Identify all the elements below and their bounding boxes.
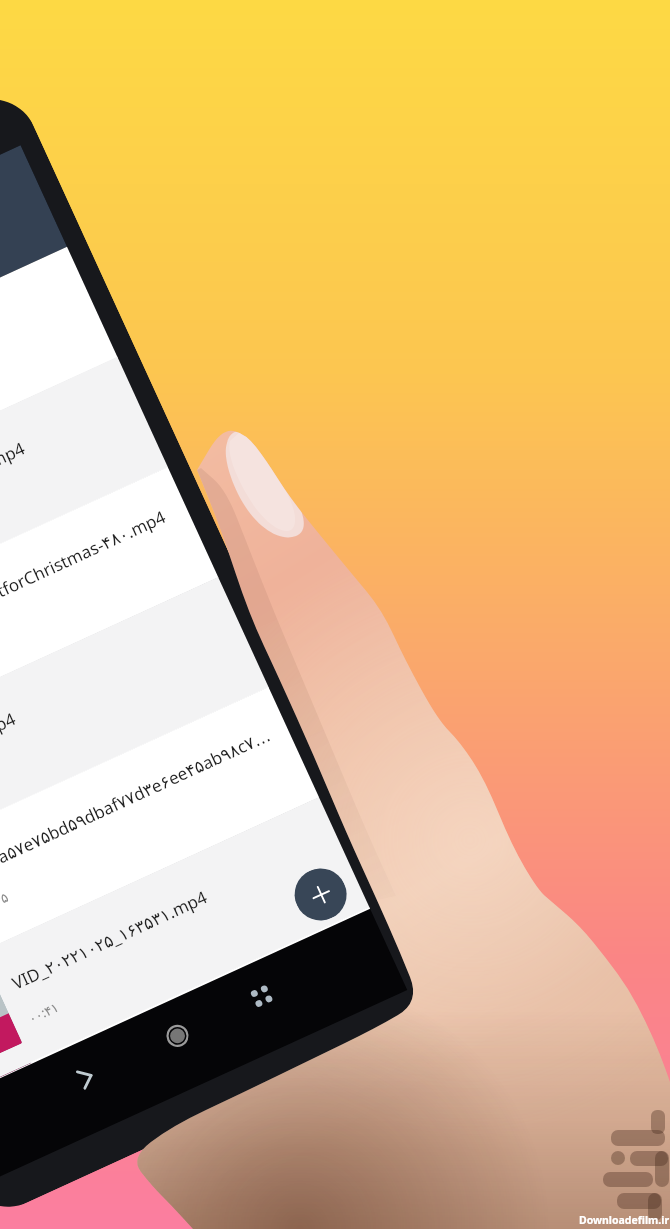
staticText: movie.mp4 <box>46 1018 128 1056</box>
button[interactable]: Recent apps <box>228 963 295 1029</box>
button[interactable]: MariahCry-AllIWantforChristmas-۴۸۰.mp4 <box>0 467 218 769</box>
staticText: clip_۱۲۳۴.mp4 <box>0 707 20 775</box>
staticText: VideoEditorProject_۱۴۰۳.mp4 <box>0 437 28 554</box>
staticText: ۰۰:۴۱ <box>25 998 62 1027</box>
button[interactable]: VID_۲۰۲۲۱۰۲۵_۱۶۳۵۳۱.mp4 <box>0 797 369 1099</box>
button[interactable] <box>0 145 67 439</box>
button[interactable]: Add <box>286 860 355 929</box>
staticText: ۰۰:۳۵ <box>0 888 11 917</box>
button[interactable]: VideoEditorProject_۱۴۰۳.mp4 <box>0 357 168 659</box>
staticText: Downloadefilm.ir <box>579 1213 670 1227</box>
staticText: ۶۲dda۵۷e۷۵bd۵۹dbaf۷۷d۳e۶ee۴۵ab۹۸c۷۶d.mp4 <box>0 723 275 885</box>
staticText: MariahCry-AllIWantforChristmas-۴۸۰.mp4 <box>0 505 169 664</box>
button[interactable]: clip_۱۲۳۴.mp4 <box>0 577 269 879</box>
button[interactable]: Video_۲۰۲۲۱۰_۱۲۳۴.mp4 <box>0 247 117 549</box>
button[interactable]: Back <box>58 1046 119 1107</box>
button[interactable]: Home <box>143 1001 212 1070</box>
button[interactable]: ۶۲dda۵۷e۷۵bd۵۹dbaf۷۷d۳e۶ee۴۵ab۹۸c۷۶d.mp4 <box>0 687 319 989</box>
button[interactable]: movie.mp4 <box>0 907 370 1100</box>
staticText: VID_۲۰۲۲۱۰۲۵_۱۶۳۵۳۱.mp4 <box>8 885 210 995</box>
